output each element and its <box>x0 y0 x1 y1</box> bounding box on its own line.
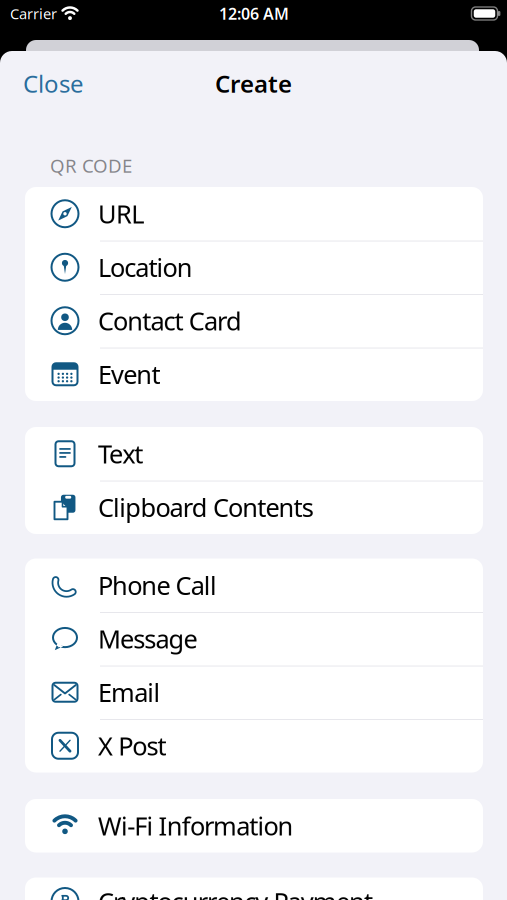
button[interactable]: Contact Card <box>25 294 483 347</box>
staticText: QR CODE <box>50 153 132 178</box>
button[interactable]: Location <box>25 240 483 294</box>
button[interactable]: Email <box>25 665 483 719</box>
staticText: URL <box>98 197 144 230</box>
button[interactable]: Close <box>23 68 143 99</box>
staticText: 12:06 AM <box>219 3 289 24</box>
staticText: Phone Call <box>98 568 217 602</box>
staticText: Location <box>98 250 193 284</box>
button[interactable]: Message <box>25 612 483 665</box>
button[interactable]: Text <box>25 427 483 480</box>
staticText: Wi-Fi Information <box>98 809 294 842</box>
staticText: X Post <box>98 729 166 762</box>
button[interactable]: Cryptocurrency Payment <box>25 877 483 900</box>
button[interactable]: Event <box>25 347 483 401</box>
button[interactable]: Wi-Fi Information <box>25 799 483 852</box>
staticText: Create <box>215 68 292 99</box>
staticText: Close <box>23 68 84 99</box>
staticText: Event <box>98 357 160 391</box>
button[interactable]: X Post <box>25 719 483 772</box>
button[interactable]: Phone Call <box>25 558 483 612</box>
staticText: Contact Card <box>98 304 242 337</box>
staticText: Email <box>98 675 160 709</box>
staticText: Carrier <box>10 4 57 23</box>
button[interactable]: URL <box>25 187 483 240</box>
staticText: Message <box>98 622 198 655</box>
staticText: Cryptocurrency Payment <box>98 885 373 900</box>
button[interactable]: Clipboard Contents <box>25 480 483 534</box>
staticText: Text <box>98 437 143 470</box>
staticText: Clipboard Contents <box>98 490 314 524</box>
